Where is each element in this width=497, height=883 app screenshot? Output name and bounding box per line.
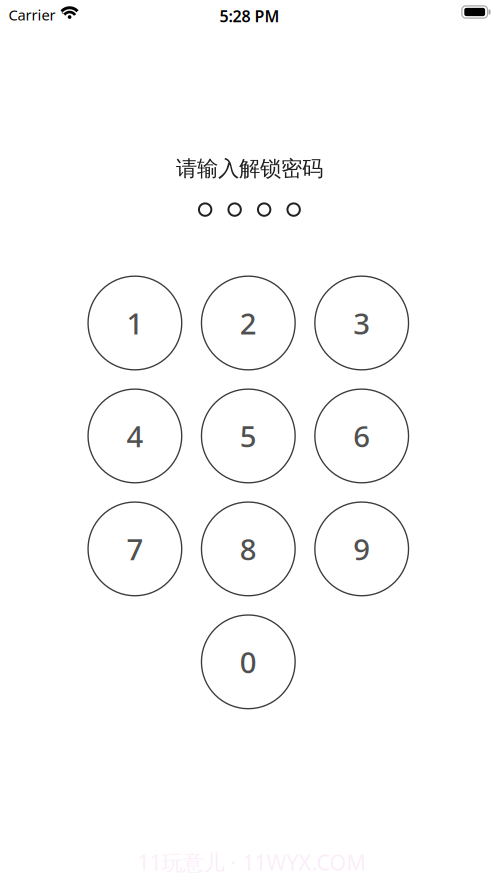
staticText: 5 bbox=[240, 416, 257, 455]
staticText: Carrier bbox=[8, 5, 55, 24]
staticText: 3 bbox=[353, 303, 370, 342]
staticText: 11玩意儿 · 11WYX.COM bbox=[137, 848, 365, 876]
staticText: 8 bbox=[240, 529, 257, 568]
staticText: 2 bbox=[240, 303, 257, 342]
button[interactable]: 2 bbox=[201, 276, 295, 370]
button[interactable]: 3 bbox=[315, 276, 409, 370]
staticText: 0 bbox=[240, 642, 257, 681]
staticText: 1 bbox=[126, 303, 143, 342]
button[interactable]: 0 bbox=[201, 615, 295, 709]
staticText: 5:28 PM bbox=[219, 5, 279, 27]
staticText: 9 bbox=[353, 529, 370, 568]
staticText: 4 bbox=[126, 416, 143, 455]
staticText: 请输入解锁密码 bbox=[176, 155, 323, 182]
button[interactable]: 7 bbox=[88, 502, 182, 596]
button[interactable]: 9 bbox=[315, 502, 409, 596]
button[interactable]: 6 bbox=[315, 389, 409, 483]
staticText: 6 bbox=[353, 416, 370, 455]
button[interactable]: 1 bbox=[88, 276, 182, 370]
button[interactable]: 4 bbox=[88, 389, 182, 483]
button[interactable]: 5 bbox=[201, 389, 295, 483]
staticText: 7 bbox=[126, 529, 143, 568]
button[interactable]: 8 bbox=[201, 502, 295, 596]
